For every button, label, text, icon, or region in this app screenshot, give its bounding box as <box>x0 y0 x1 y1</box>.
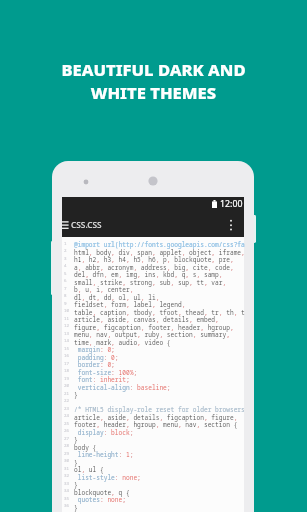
staticText: 19 <box>64 376 70 382</box>
staticText: ol, ul { <box>74 465 104 473</box>
staticText: @import url(http://fonts.googleapis.com/… <box>74 240 245 248</box>
button[interactable]: More options <box>225 218 237 230</box>
staticText: quotes: none; <box>74 495 126 503</box>
staticText: 13 <box>64 331 70 337</box>
staticText: 2 <box>64 248 67 254</box>
staticText: dl, dt, dd, ol, ul, li, <box>74 293 160 301</box>
staticText: 12 <box>64 323 70 329</box>
staticText: 18 <box>64 368 70 374</box>
staticText: vertical-align: baseline; <box>74 383 171 391</box>
staticText: 14 <box>64 338 70 344</box>
staticText: list-style: none; <box>74 473 141 481</box>
staticText: article, aside, details, figcaption, fig… <box>74 413 238 421</box>
staticText: 29 <box>64 451 70 457</box>
staticText: font-size: 100%; <box>74 368 138 376</box>
staticText: 22 <box>64 398 70 404</box>
staticText: 8 <box>64 293 67 299</box>
staticText: figure, figcaption, footer, header, hgro… <box>74 323 234 331</box>
staticText: } <box>74 503 78 511</box>
staticText: CSS.CSS <box>71 219 102 230</box>
staticText: 31 <box>64 466 70 472</box>
staticText: } <box>74 458 78 466</box>
staticText: } <box>74 390 78 398</box>
staticText: 32 <box>64 473 70 479</box>
staticText: /* HTML5 display-role reset for older br… <box>74 405 245 413</box>
staticText: a, abbr, acronym, address, big, cite, co… <box>74 263 234 271</box>
staticText: font: inherit; <box>74 375 130 383</box>
staticText: small, strike, strong, sub, sup, tt, var… <box>74 278 227 286</box>
staticText: menu, nav, output, ruby, section, summar… <box>74 330 230 338</box>
staticText: 10 <box>64 308 70 314</box>
staticText: blockquote, q { <box>74 488 130 496</box>
staticText: time, mark, audio, video { <box>74 338 171 346</box>
staticText: fieldset, form, label, legend, <box>74 300 186 308</box>
staticText: 26 <box>64 428 70 434</box>
staticText: 35 <box>64 496 70 502</box>
staticText: BEAUTIFUL DARK AND WHITE THEMES <box>0 58 307 104</box>
staticText: margin: 0; <box>74 345 115 353</box>
staticText: 36 <box>64 503 70 509</box>
staticText: 9 <box>64 301 67 307</box>
staticText: 17 <box>64 361 70 367</box>
staticText: 28 <box>64 443 70 449</box>
staticText: 20 <box>64 383 70 389</box>
staticText: h1, h2, h3, h4, h5, h6, p, blockquote, p… <box>74 255 234 263</box>
staticText: 12:00 <box>220 198 243 210</box>
staticText: b, u, i, center, <box>74 285 134 293</box>
staticText: 11 <box>64 316 70 322</box>
staticText: 34 <box>64 488 70 494</box>
staticText: table, caption, tbody, tfoot, thead, tr,… <box>74 308 245 316</box>
staticText: 23 <box>64 406 70 412</box>
staticText: } <box>74 435 78 443</box>
staticText: 15 <box>64 346 70 352</box>
staticText: 24 <box>64 413 70 419</box>
button[interactable]: Menu <box>62 217 76 231</box>
staticText: padding: 0; <box>74 353 119 361</box>
staticText: line-height: 1; <box>74 450 134 458</box>
staticText: 6 <box>64 278 67 284</box>
staticText: article, aside, canvas, details, embed, <box>74 315 219 323</box>
staticText: 16 <box>64 353 70 359</box>
staticText: 4 <box>64 263 67 269</box>
staticText: 21 <box>64 391 70 397</box>
staticText: 3 <box>64 256 67 262</box>
staticText: html, body, div, span, applet, object, i… <box>74 248 245 256</box>
staticText: footer, header, hgroup, menu, nav, secti… <box>74 420 238 428</box>
staticText: display: block; <box>74 428 134 436</box>
staticText: body { <box>74 443 97 451</box>
staticText: } <box>74 480 78 488</box>
staticText: 5 <box>64 271 67 277</box>
staticText: del, dfn, em, img, ins, kbd, q, s, samp, <box>74 270 223 278</box>
staticText: 33 <box>64 481 70 487</box>
staticText: 27 <box>64 436 70 442</box>
staticText: border: 0; <box>74 360 115 368</box>
staticText: 25 <box>64 421 70 427</box>
staticText: 30 <box>64 458 70 464</box>
staticText: 7 <box>64 286 67 292</box>
staticText: 1 <box>64 241 67 247</box>
